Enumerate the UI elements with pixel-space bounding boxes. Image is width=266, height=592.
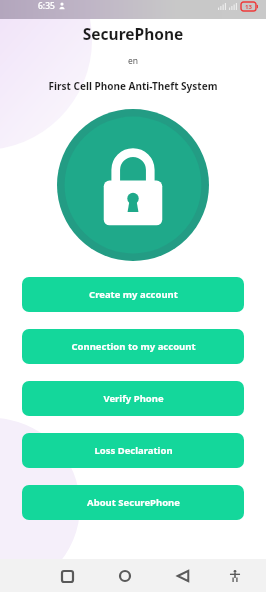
button[interactable]: Back — [170, 563, 196, 589]
button[interactable]: Verify Phone — [22, 381, 244, 416]
staticText: 13 — [245, 3, 252, 11]
staticText: Create my account — [89, 288, 178, 301]
staticText: First Cell Phone Anti-Theft System — [0, 79, 266, 93]
button[interactable]: Recent apps — [54, 563, 80, 589]
button[interactable]: Loss Declaration — [22, 433, 244, 468]
button[interactable]: Connection to my account — [22, 329, 244, 364]
button[interactable]: Home — [112, 563, 138, 589]
staticText: en — [0, 55, 266, 67]
staticText: SecurePhone — [0, 23, 266, 44]
staticText: Loss Declaration — [94, 444, 173, 457]
staticText: About SecurePhone — [87, 496, 180, 509]
button[interactable]: About SecurePhone — [22, 485, 244, 520]
staticText: Connection to my account — [71, 340, 196, 353]
staticText: Verify Phone — [103, 392, 164, 405]
button[interactable]: Create my account — [22, 277, 244, 312]
staticText: 6:35 — [38, 0, 55, 12]
button[interactable]: Accessibility — [222, 563, 248, 589]
